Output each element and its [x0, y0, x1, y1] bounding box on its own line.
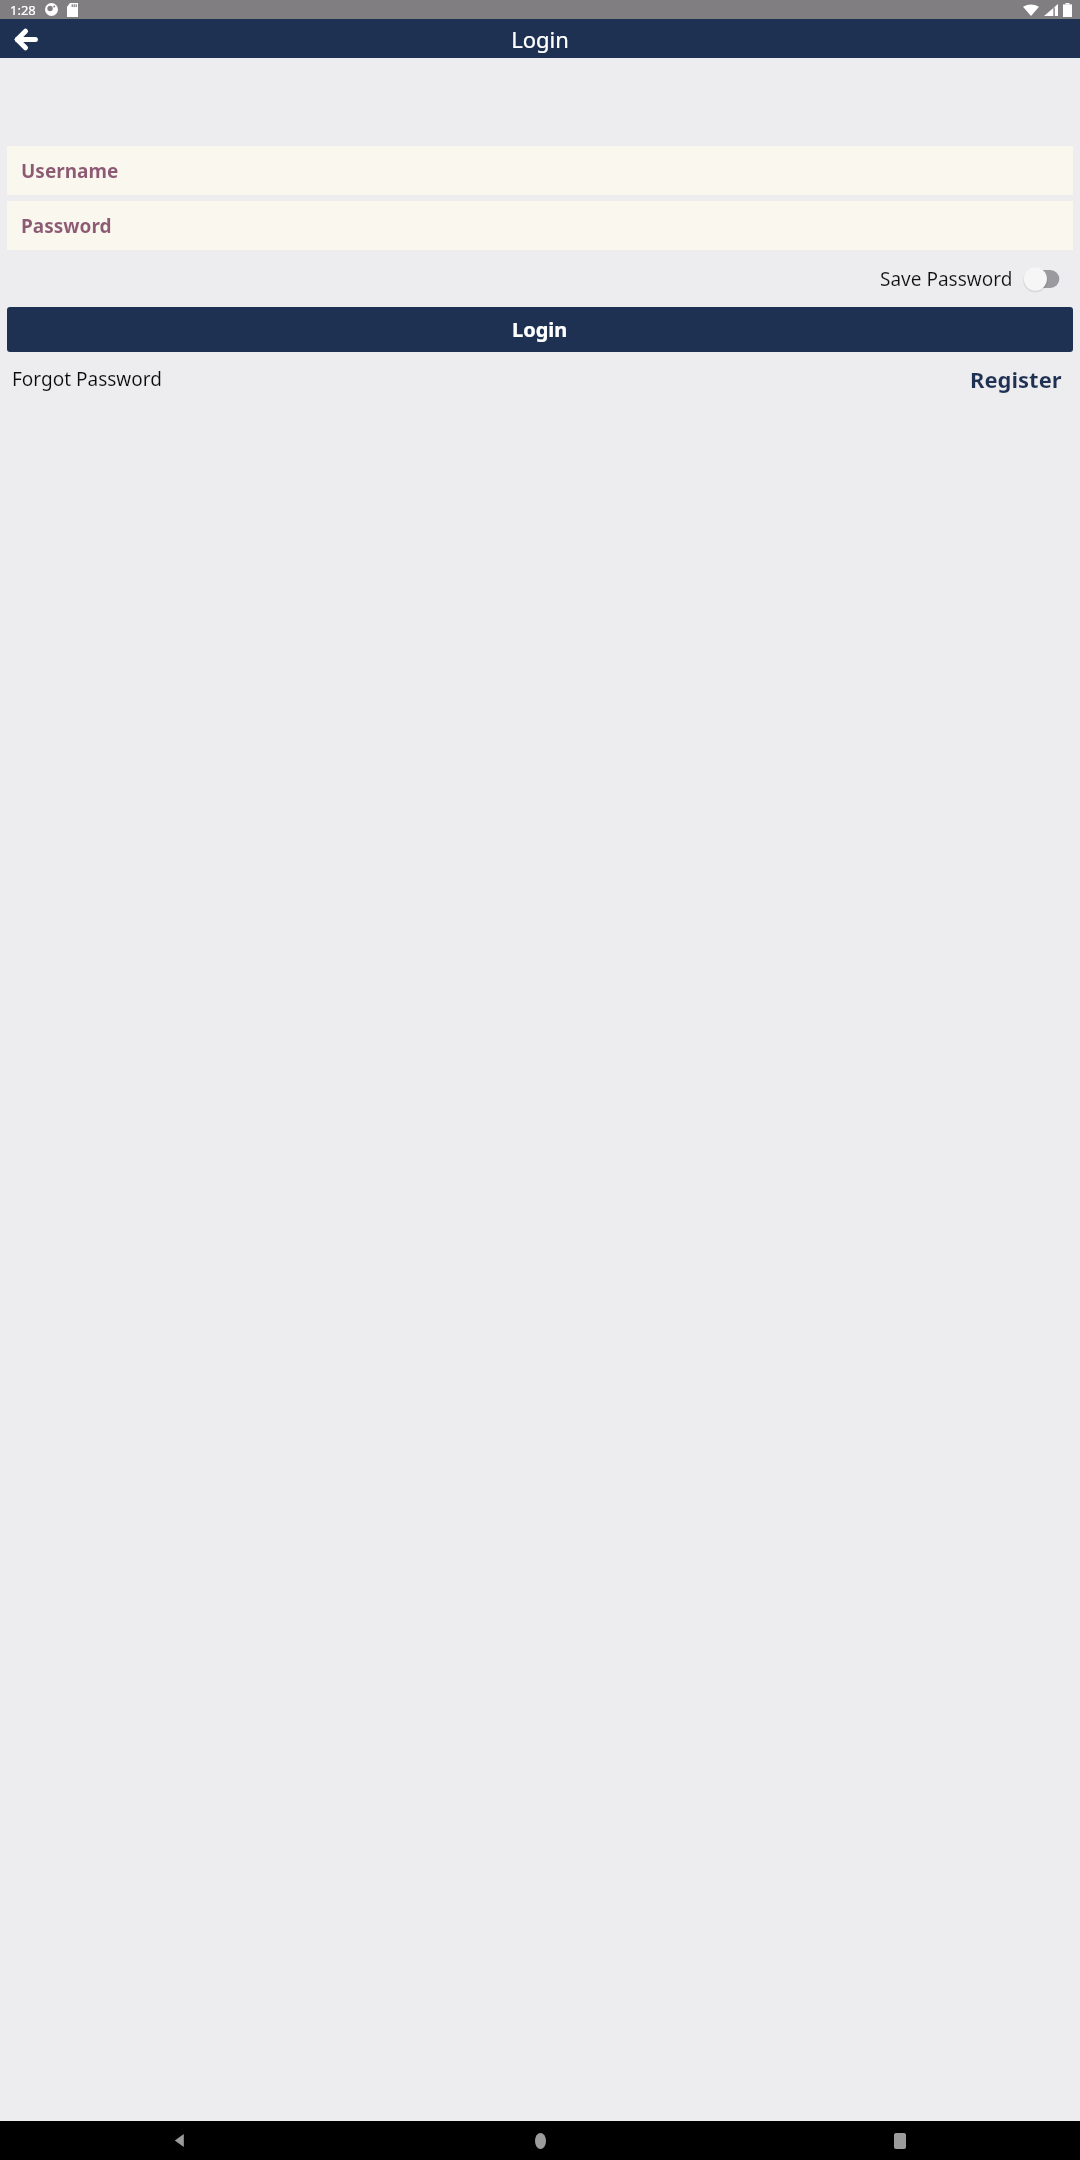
- staticText: Login: [512, 316, 568, 343]
- button[interactable]: Back: [6, 20, 44, 58]
- staticText: Save Password: [880, 266, 1013, 292]
- button[interactable]: Password: [7, 201, 1073, 250]
- staticText: Forgot Password: [12, 366, 162, 392]
- button[interactable]: Register: [970, 360, 1062, 398]
- staticText: Register: [970, 364, 1062, 394]
- button[interactable]: Back: [0, 2121, 360, 2160]
- staticText: 1:28: [10, 1, 36, 19]
- staticText: Password: [21, 213, 112, 239]
- staticText: Username: [21, 158, 119, 184]
- button[interactable]: Home: [360, 2121, 720, 2160]
- button[interactable]: Recent apps: [720, 2121, 1080, 2160]
- button[interactable]: Login: [7, 307, 1073, 352]
- button[interactable]: Username: [7, 146, 1073, 195]
- staticText: Login: [0, 24, 1080, 54]
- button[interactable]: Save Password: [880, 266, 1062, 292]
- button[interactable]: Forgot Password: [12, 362, 162, 396]
